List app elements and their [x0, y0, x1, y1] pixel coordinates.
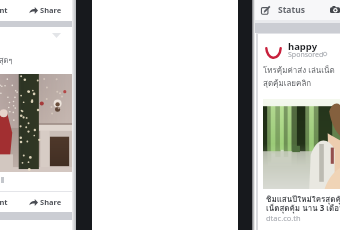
- button[interactable]: Comment: [0, 192, 10, 212]
- staticText: ent: [0, 197, 8, 207]
- staticText: Share: [40, 5, 62, 15]
- button[interactable]: Share: [29, 0, 62, 20]
- staticText: สุดคุ้มเลยคลิก: [263, 77, 312, 90]
- staticText: Sponsored: [288, 50, 324, 60]
- staticText: dtac.co.th: [266, 213, 301, 223]
- staticText: Status: [278, 4, 305, 16]
- staticText: เน็ตสุดคุ้ม นาน 3 เดือน: [266, 202, 340, 215]
- button[interactable]: Photo: [325, 0, 340, 20]
- staticText: สุดๆ: [0, 54, 13, 66]
- staticText: ent: [0, 5, 8, 15]
- staticText: Share: [40, 197, 62, 207]
- button[interactable]: Share: [29, 192, 62, 212]
- button[interactable]: Comment: [0, 0, 10, 20]
- staticText: happy: [288, 40, 318, 53]
- button[interactable]: Status: [261, 0, 318, 20]
- staticText: โทรคุ้มค่าส่ง เล่นเน็ต: [263, 64, 335, 77]
- staticText: ชิมแสนปีใหม่ใครสุดคุ้ม: [266, 193, 340, 206]
